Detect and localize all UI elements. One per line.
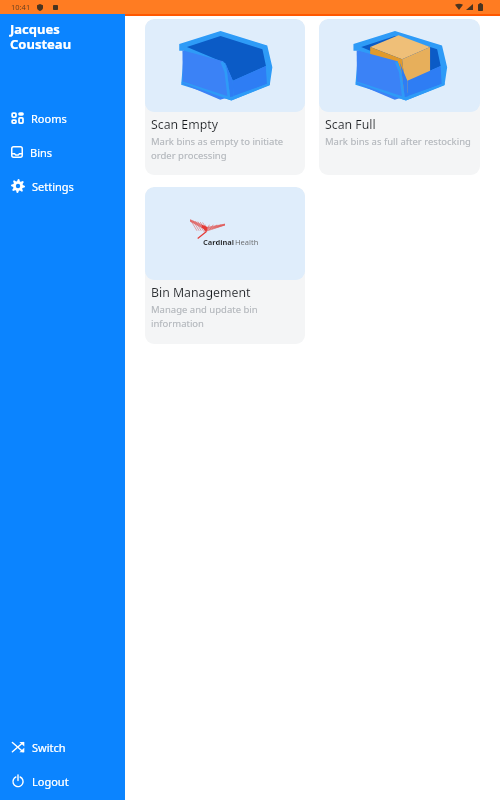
staticText: Logout	[32, 774, 69, 789]
staticText: Rooms	[31, 111, 67, 126]
button[interactable]: Cardinal	[145, 187, 305, 344]
staticText: Bin Management	[151, 284, 251, 301]
staticText: Settings	[32, 179, 74, 194]
staticText: Bins	[30, 145, 53, 160]
staticText: Scan Full	[325, 116, 376, 133]
staticText: Mark bins as full after restocking	[325, 135, 471, 148]
staticText: Jacques Cousteau	[10, 20, 72, 52]
button[interactable]: Switch	[0, 730, 125, 764]
button[interactable]: Scan Full	[319, 19, 480, 175]
button[interactable]: Scan Empty	[145, 19, 305, 175]
button[interactable]: Logout	[0, 764, 125, 798]
staticText: Scan Empty	[151, 116, 218, 133]
staticText: Health	[235, 237, 259, 247]
staticText: Switch	[32, 740, 66, 755]
button[interactable]: Rooms	[0, 101, 125, 135]
staticText: Mark bins as empty to initiate order pro…	[151, 135, 302, 162]
button[interactable]: Settings	[0, 169, 125, 203]
staticText: Manage and update bin information	[151, 303, 302, 330]
button[interactable]: Bins	[0, 135, 125, 169]
staticText: 10:41	[11, 2, 31, 12]
staticText: Cardinal	[203, 237, 235, 247]
